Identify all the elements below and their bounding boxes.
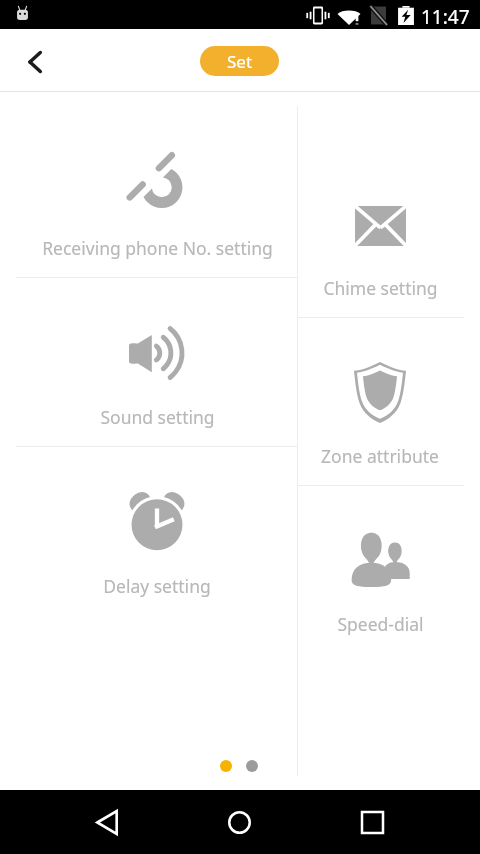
button[interactable]: [232, 486, 480, 656]
staticText: 11:47: [421, 4, 470, 30]
staticText: Set: [227, 50, 253, 73]
button[interactable]: Back: [13, 40, 57, 84]
button[interactable]: [9, 278, 305, 446]
staticText: Speed-dial: [337, 612, 424, 636]
button[interactable]: [9, 447, 305, 617]
staticText: Zone attribute: [321, 444, 439, 468]
staticText: Receiving phone No. setting: [42, 236, 273, 260]
button[interactable]: Home: [211, 790, 267, 854]
staticText: Chime setting: [323, 276, 438, 300]
button[interactable]: Set: [200, 46, 279, 76]
staticText: Sound setting: [100, 405, 215, 429]
button[interactable]: [232, 318, 480, 485]
button[interactable]: Back: [79, 790, 135, 854]
staticText: Delay setting: [103, 574, 211, 598]
button[interactable]: Recent apps: [344, 790, 400, 854]
button[interactable]: [232, 106, 480, 317]
button[interactable]: [9, 93, 305, 277]
